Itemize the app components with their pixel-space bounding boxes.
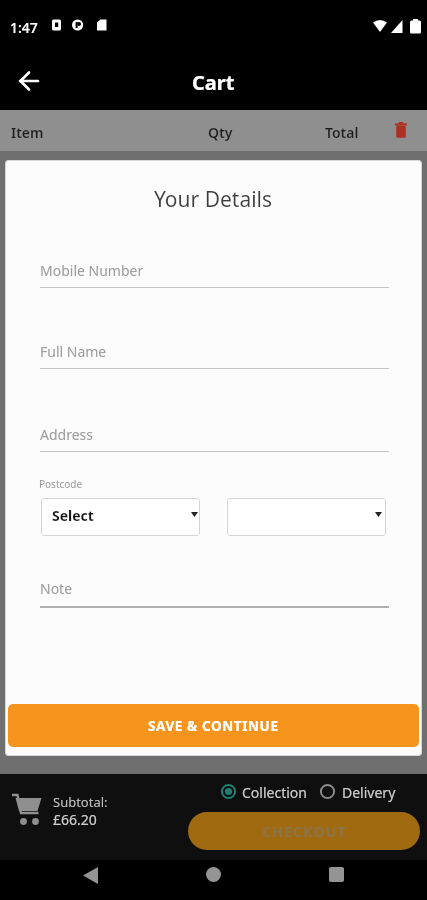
staticText: Address bbox=[40, 425, 93, 444]
staticText: Postcode bbox=[39, 477, 83, 491]
staticText: Delivery bbox=[342, 783, 396, 802]
staticText: Qty bbox=[208, 123, 233, 142]
staticText: Mobile Number bbox=[40, 261, 144, 280]
staticText: Collection bbox=[242, 783, 307, 802]
staticText: Cart bbox=[192, 69, 235, 96]
staticText: Item bbox=[11, 123, 44, 142]
staticText: Full Name bbox=[40, 342, 107, 361]
staticText: Note bbox=[40, 579, 73, 598]
staticText: Subtotal: bbox=[53, 793, 108, 811]
staticText: Total bbox=[325, 123, 359, 142]
staticText: CHECKOUT bbox=[262, 821, 347, 841]
staticText: SAVE & CONTINUE bbox=[148, 717, 279, 735]
staticText: Select bbox=[52, 506, 94, 525]
staticText: Your Details bbox=[154, 185, 273, 214]
staticText: £66.20 bbox=[53, 810, 97, 829]
staticText: 1:47 bbox=[10, 18, 38, 37]
